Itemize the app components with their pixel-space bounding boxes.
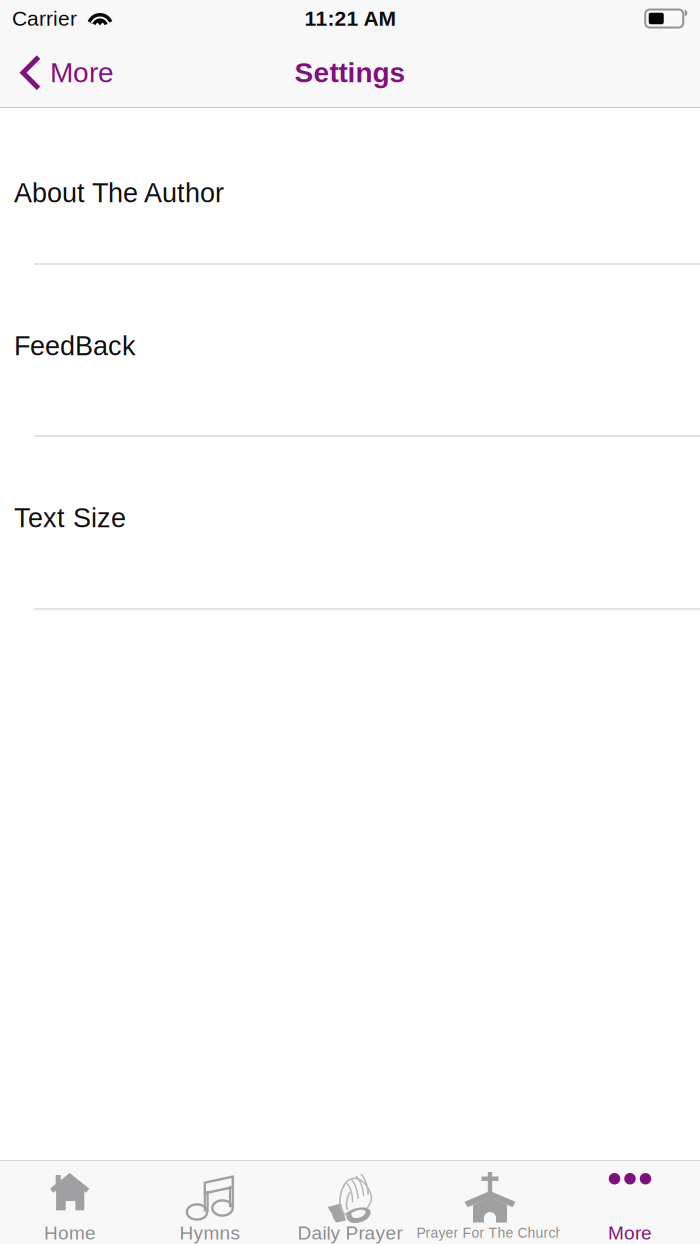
- staticText: Settings: [294, 57, 405, 88]
- staticText: Hymns: [179, 1222, 240, 1244]
- button[interactable]: Home: [0, 1160, 140, 1244]
- button[interactable]: FeedBack: [0, 265, 700, 437]
- staticText: Daily Prayer: [297, 1222, 402, 1244]
- staticText: FeedBack: [14, 331, 136, 361]
- staticText: Prayer For The Church: [416, 1225, 563, 1241]
- button[interactable]: More: [0, 37, 130, 108]
- staticText: About The Author: [14, 178, 224, 208]
- staticText: Home: [44, 1222, 96, 1244]
- staticText: More: [608, 1222, 652, 1244]
- staticText: 11:21 AM: [304, 7, 395, 30]
- button[interactable]: About The Author: [0, 108, 700, 265]
- staticText: Carrier: [12, 7, 77, 30]
- button[interactable]: Prayer For The Church: [420, 1160, 560, 1244]
- button[interactable]: Daily Prayer: [280, 1160, 420, 1244]
- button[interactable]: More: [560, 1160, 700, 1244]
- staticText: Text Size: [14, 503, 126, 533]
- button[interactable]: Text Size: [0, 437, 700, 610]
- staticText: More: [50, 57, 114, 88]
- button[interactable]: Hymns: [140, 1160, 280, 1244]
